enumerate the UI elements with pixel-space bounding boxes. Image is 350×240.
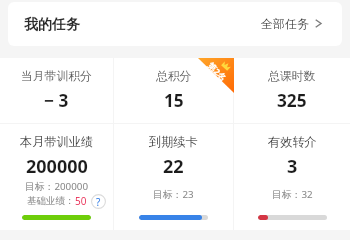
button[interactable]: 全部任务 [261,16,322,31]
staticText: ? [96,195,101,209]
button[interactable]: 总积分 [114,58,233,123]
staticText: 200000 [26,154,88,179]
button[interactable]: Help [91,194,106,209]
staticText: 目标：200000 [25,180,89,193]
button[interactable]: 当月带训积分 [0,58,113,123]
staticText: − 3 [44,89,69,112]
staticText: 本月带训业绩 [20,134,94,149]
staticText: 3 [287,154,298,179]
button[interactable]: 总课时数 [234,58,350,123]
staticText: 有效转介 [268,134,317,149]
staticText: 我的任务 [24,16,80,34]
staticText: 第2名 [205,60,229,84]
staticText: 目标：23 [153,188,194,201]
staticText: 总积分 [156,69,192,84]
button[interactable]: 本月带训业绩 [0,124,113,230]
staticText: 50 [75,194,87,208]
staticText: 到期续卡 [149,134,198,149]
staticText: 总课时数 [268,69,316,84]
button[interactable]: Rank 2 [198,58,234,93]
staticText: 目标：32 [272,188,313,201]
staticText: 325 [277,89,307,112]
staticText: 22 [163,154,184,179]
button[interactable]: 我的任务 [8,2,342,46]
button[interactable]: 有效转介 [234,124,350,230]
staticText: 基础业绩： [27,195,75,207]
staticText: 当月带训积分 [21,69,92,84]
button[interactable]: 到期续卡 [114,124,233,230]
staticText: 全部任务 [261,16,309,31]
staticText: 15 [164,89,184,112]
